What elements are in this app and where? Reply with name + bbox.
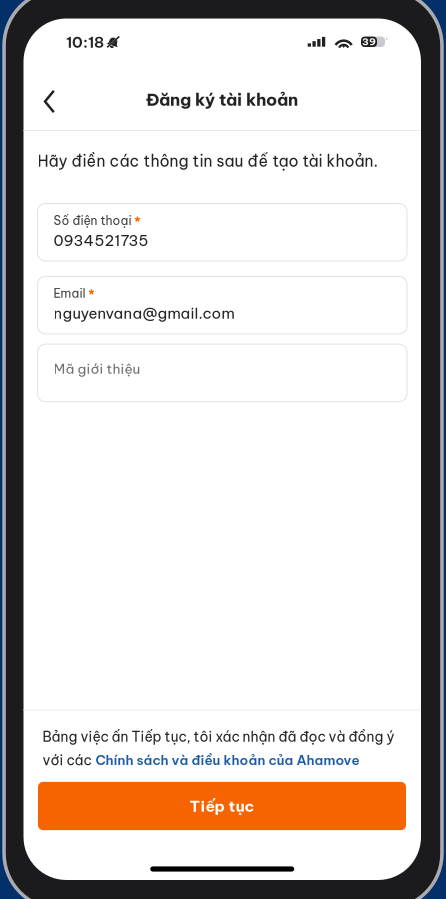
staticText: 10:18 [66,32,104,52]
staticText: 39 [362,35,376,48]
staticText: 0934521735 [53,231,148,250]
staticText: nguyenvana@gmail.com [53,304,234,323]
staticText: Email [53,286,85,301]
button[interactable]: Back [27,79,71,123]
staticText: Đăng ký tài khoản [146,89,298,110]
staticText: Chính sách và điều khoản của Ahamove [95,752,359,769]
staticText: Bảng việc ấn Tiếp tục, tôi xác nhận đã đ… [42,728,394,745]
button[interactable]: Tiếp tục [38,782,406,830]
staticText: Mã giới thiệu [53,360,140,377]
staticText: * [134,213,141,230]
staticText: với các [42,751,91,769]
staticText: Tiếp tục [189,796,254,816]
staticText: Số điện thoại [53,213,131,228]
staticText: Hãy điền các thông tin sau để tạo tài kh… [38,151,378,171]
staticText: * [88,286,95,303]
button[interactable]: Chính sách và điều khoản của Ahamove [95,752,359,769]
